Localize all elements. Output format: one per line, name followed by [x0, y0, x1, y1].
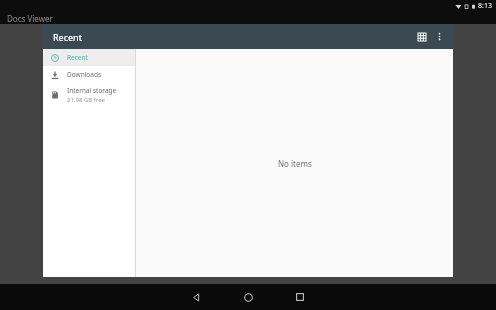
staticText: Internal storage	[67, 86, 117, 95]
staticText: No items	[278, 158, 312, 169]
button[interactable]: Internal storage	[43, 83, 135, 106]
button[interactable]: Recent apps	[279, 284, 321, 310]
staticText: 8:13	[478, 1, 492, 11]
staticText: Recent	[67, 53, 88, 62]
button[interactable]: Grid view	[412, 27, 431, 46]
button[interactable]: Home	[227, 284, 269, 310]
button[interactable]: Downloads	[43, 66, 135, 83]
staticText: Downloads	[67, 70, 102, 79]
button[interactable]: Back	[175, 284, 217, 310]
button[interactable]: Recent	[43, 49, 135, 66]
staticText: Docs Viewer	[7, 13, 53, 24]
staticText: Recent	[53, 31, 82, 43]
button[interactable]: More options	[431, 28, 448, 45]
staticText: 21.98 GB free	[67, 96, 105, 104]
